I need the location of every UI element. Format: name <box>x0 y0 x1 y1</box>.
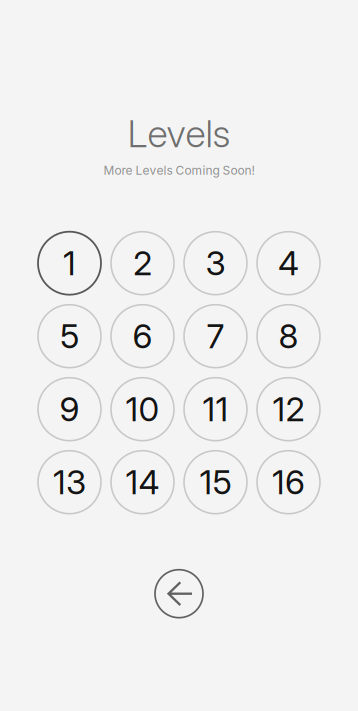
staticText: 11 <box>202 389 228 429</box>
button[interactable]: 8 <box>257 305 320 368</box>
staticText: 5 <box>60 316 79 356</box>
button[interactable]: 3 <box>184 232 247 295</box>
staticText: 1 <box>63 243 76 283</box>
staticText: 8 <box>278 316 298 356</box>
staticText: 10 <box>125 389 159 429</box>
button[interactable]: 15 <box>184 451 247 514</box>
staticText: Levels <box>127 111 230 156</box>
button[interactable]: 9 <box>38 378 101 441</box>
staticText: 2 <box>133 243 152 283</box>
button[interactable]: 6 <box>111 305 174 368</box>
button[interactable]: 7 <box>184 305 247 368</box>
staticText: 9 <box>59 389 79 429</box>
staticText: 6 <box>132 316 152 356</box>
staticText: 14 <box>125 462 159 502</box>
button[interactable]: 10 <box>111 378 174 441</box>
button[interactable]: Back <box>155 570 203 618</box>
button[interactable]: 11 <box>184 378 247 441</box>
staticText: 3 <box>205 243 225 283</box>
button[interactable]: 5 <box>38 305 101 368</box>
staticText: 12 <box>272 389 304 429</box>
button[interactable]: 14 <box>111 451 174 514</box>
button[interactable]: 2 <box>111 232 174 295</box>
button[interactable]: 12 <box>257 378 320 441</box>
staticText: 7 <box>206 316 224 356</box>
staticText: 16 <box>272 462 305 502</box>
staticText: 4 <box>278 243 299 283</box>
staticText: 13 <box>53 462 86 502</box>
button[interactable]: 13 <box>38 451 101 514</box>
staticText: 15 <box>199 462 231 502</box>
button[interactable]: 1 <box>38 232 101 295</box>
staticText: More Levels Coming Soon! <box>103 163 254 178</box>
button[interactable]: 4 <box>257 232 320 295</box>
button[interactable]: 16 <box>257 451 320 514</box>
